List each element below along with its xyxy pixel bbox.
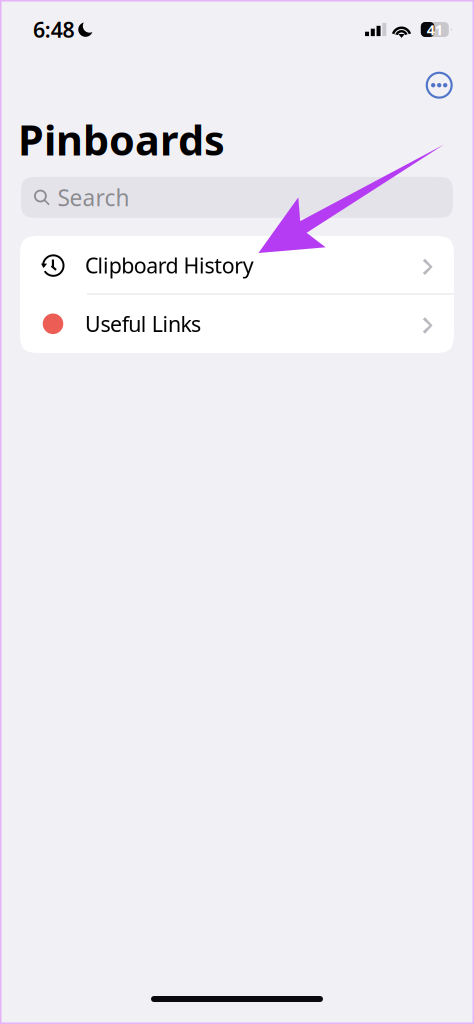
staticText: 41 (427, 20, 443, 39)
staticText: 6:48 (33, 15, 74, 44)
button[interactable]: Search (21, 177, 453, 218)
staticText: Search (57, 182, 129, 212)
button[interactable]: Useful Links (20, 294, 454, 353)
staticText: Useful Links (85, 310, 201, 338)
staticText: Pinboards (18, 112, 225, 167)
staticText: Clipboard History (85, 251, 254, 279)
button[interactable]: Clipboard History (20, 236, 454, 294)
button[interactable]: More options (417, 63, 461, 107)
